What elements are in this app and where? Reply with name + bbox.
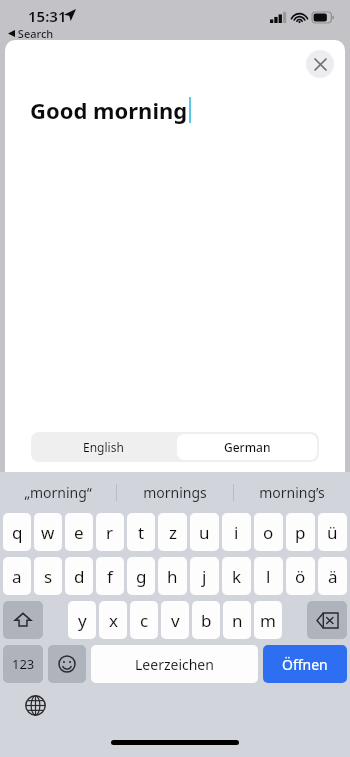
staticText: p: [295, 521, 306, 544]
button[interactable]: p: [286, 513, 315, 551]
button[interactable]: s: [34, 557, 62, 595]
button[interactable]: l: [254, 557, 283, 595]
button[interactable]: x: [99, 601, 127, 639]
staticText: u: [199, 521, 210, 544]
staticText: ö: [295, 565, 306, 588]
staticText: morning’s: [259, 483, 325, 502]
staticText: ä: [328, 565, 338, 588]
button[interactable]: c: [130, 601, 158, 639]
staticText: j: [202, 565, 207, 588]
staticText: ü: [327, 521, 338, 544]
button[interactable]: f: [96, 557, 124, 595]
staticText: k: [232, 565, 242, 588]
button[interactable]: u: [190, 513, 219, 551]
button[interactable]: h: [158, 557, 187, 595]
button[interactable]: Leerzeichen: [91, 645, 258, 683]
staticText: h: [167, 565, 178, 588]
button[interactable]: y: [68, 601, 96, 639]
button[interactable]: i: [222, 513, 251, 551]
staticText: a: [12, 565, 22, 588]
staticText: Leerzeichen: [135, 655, 214, 674]
button[interactable]: Switch keyboard language: [22, 692, 48, 718]
staticText: Good morning: [30, 95, 188, 125]
button[interactable]: Emoji: [48, 645, 86, 683]
button[interactable]: ö: [286, 557, 315, 595]
staticText: Öffnen: [282, 655, 328, 674]
staticText: s: [44, 565, 53, 588]
button[interactable]: English: [31, 432, 175, 462]
staticText: i: [234, 521, 239, 544]
staticText: z: [169, 521, 177, 544]
staticText: b: [201, 609, 212, 632]
staticText: f: [107, 565, 113, 588]
staticText: r: [106, 521, 114, 544]
button[interactable]: e: [65, 513, 93, 551]
button[interactable]: Öffnen: [263, 645, 347, 683]
button[interactable]: Shift: [3, 601, 43, 639]
staticText: g: [136, 565, 147, 588]
button[interactable]: d: [65, 557, 93, 595]
button[interactable]: q: [3, 513, 31, 551]
button[interactable]: Close: [306, 50, 334, 78]
button[interactable]: a: [3, 557, 31, 595]
staticText: d: [74, 565, 85, 588]
staticText: v: [171, 609, 180, 632]
button[interactable]: ü: [318, 513, 347, 551]
staticText: m: [260, 609, 276, 632]
staticText: t: [138, 521, 145, 544]
staticText: o: [263, 521, 274, 544]
staticText: c: [140, 609, 149, 632]
staticText: German: [224, 439, 271, 455]
button[interactable]: k: [222, 557, 251, 595]
staticText: mornings: [143, 483, 207, 502]
button[interactable]: Backspace: [307, 601, 347, 639]
button[interactable]: v: [161, 601, 189, 639]
button[interactable]: w: [34, 513, 62, 551]
button[interactable]: o: [254, 513, 283, 551]
button[interactable]: r: [96, 513, 124, 551]
staticText: w: [41, 521, 55, 544]
staticText: „morning“: [24, 483, 92, 502]
button[interactable]: z: [158, 513, 187, 551]
button[interactable]: n: [223, 601, 251, 639]
button[interactable]: g: [127, 557, 155, 595]
button[interactable]: t: [127, 513, 155, 551]
staticText: e: [74, 521, 84, 544]
staticText: Search: [15, 26, 54, 40]
button[interactable]: morning’s: [234, 472, 350, 513]
staticText: l: [266, 565, 271, 588]
staticText: y: [78, 609, 87, 632]
staticText: x: [109, 609, 118, 632]
button[interactable]: j: [190, 557, 219, 595]
button[interactable]: German: [177, 434, 317, 460]
button[interactable]: b: [192, 601, 220, 639]
staticText: q: [12, 521, 23, 544]
button[interactable]: m: [254, 601, 282, 639]
staticText: 123: [12, 655, 35, 673]
button[interactable]: ä: [318, 557, 347, 595]
button[interactable]: 123: [3, 645, 43, 683]
button[interactable]: mornings: [117, 472, 233, 513]
button[interactable]: „morning“: [0, 472, 116, 513]
staticText: 15:31: [28, 6, 67, 26]
staticText: n: [232, 609, 243, 632]
staticText: English: [83, 439, 124, 455]
